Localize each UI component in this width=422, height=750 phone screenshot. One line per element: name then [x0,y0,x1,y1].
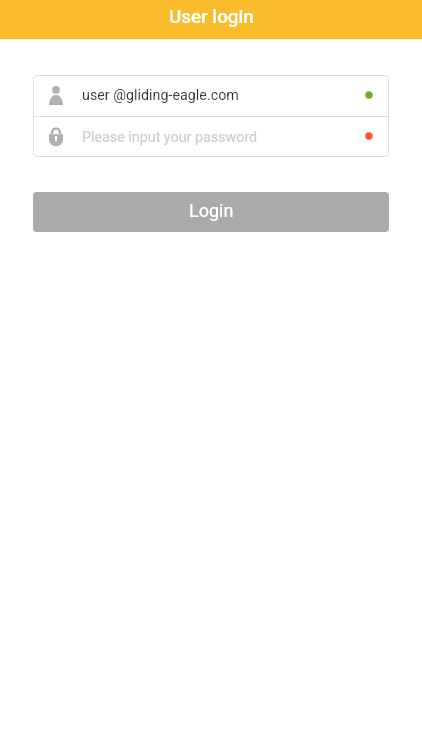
other: Account [49,86,63,105]
staticText: user @gliding-eagle.com [82,87,239,104]
staticText: Login [189,200,234,221]
button[interactable]: Account [33,75,389,116]
other: Password [49,127,63,146]
staticText: User login [169,6,254,28]
staticText: Please input your password [82,129,258,146]
button[interactable]: Login [33,192,389,232]
button[interactable]: Password [33,117,389,157]
